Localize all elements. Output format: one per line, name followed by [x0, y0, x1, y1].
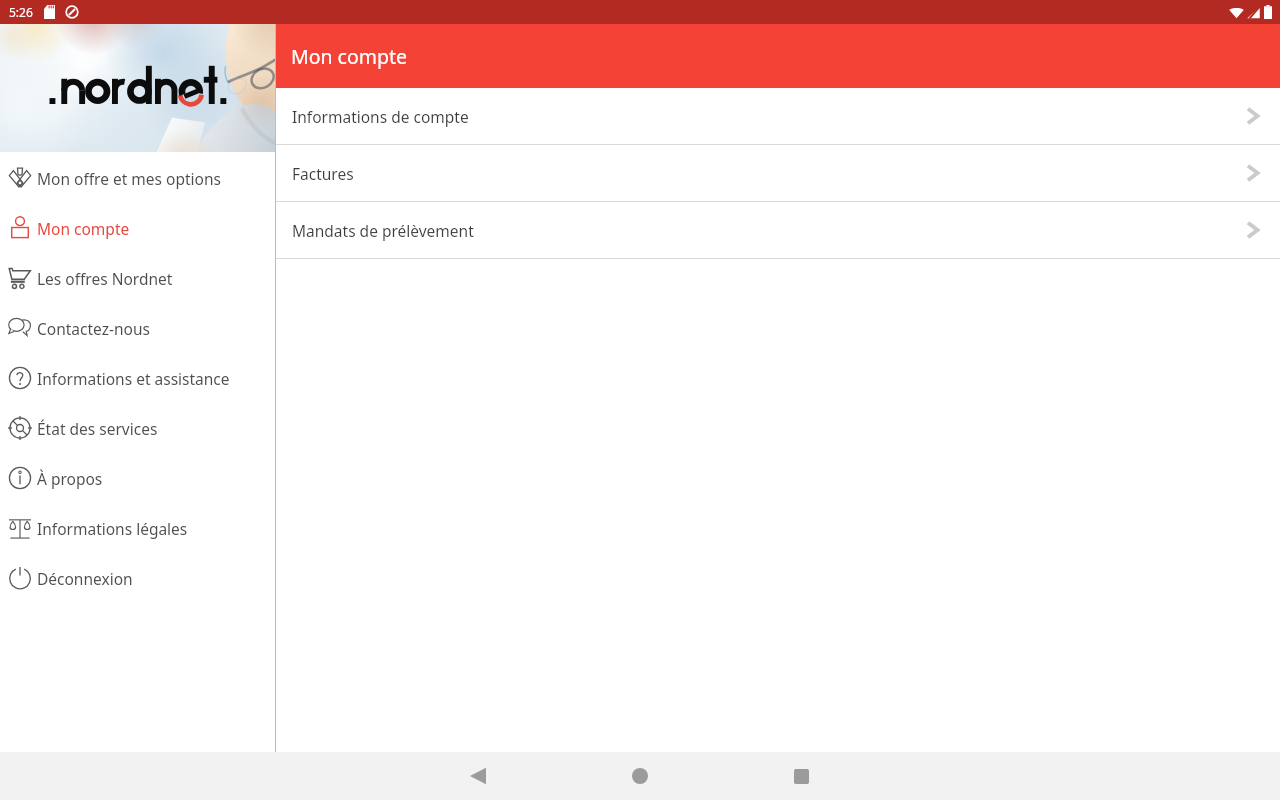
staticText: Informations et assistance [37, 368, 230, 389]
staticText: 5:26 [9, 4, 33, 20]
staticText: Informations légales [37, 518, 188, 539]
button[interactable]: Contactez-nous [0, 303, 275, 353]
button[interactable]: État des services [0, 403, 275, 453]
staticText: Les offres Nordnet [37, 268, 173, 289]
staticText: Mon compte [37, 218, 130, 239]
staticText: Contactez-nous [37, 318, 150, 339]
button[interactable]: Mon compte [0, 203, 275, 253]
button[interactable]: Les offres Nordnet [0, 253, 275, 303]
staticText: Mandats de prélèvement [292, 220, 1246, 241]
button[interactable]: Factures [276, 145, 1280, 201]
staticText: À propos [37, 468, 103, 489]
button[interactable]: Home [616, 752, 664, 800]
staticText: État des services [37, 418, 158, 439]
staticText: Déconnexion [37, 568, 133, 589]
button[interactable]: Back [454, 752, 502, 800]
button[interactable]: Informations légales [0, 503, 275, 553]
button[interactable]: Recent apps [777, 752, 825, 800]
button[interactable]: Mon offre et mes options [0, 153, 275, 203]
staticText: Mon offre et mes options [37, 168, 221, 189]
button[interactable]: Déconnexion [0, 553, 275, 603]
button[interactable]: Informations et assistance [0, 353, 275, 403]
staticText: Informations de compte [292, 106, 1246, 127]
staticText: Factures [292, 163, 1246, 184]
button[interactable]: Mandats de prélèvement [276, 202, 1280, 258]
staticText: Mon compte [291, 43, 408, 70]
button[interactable]: Informations de compte [276, 88, 1280, 144]
button[interactable]: À propos [0, 453, 275, 503]
